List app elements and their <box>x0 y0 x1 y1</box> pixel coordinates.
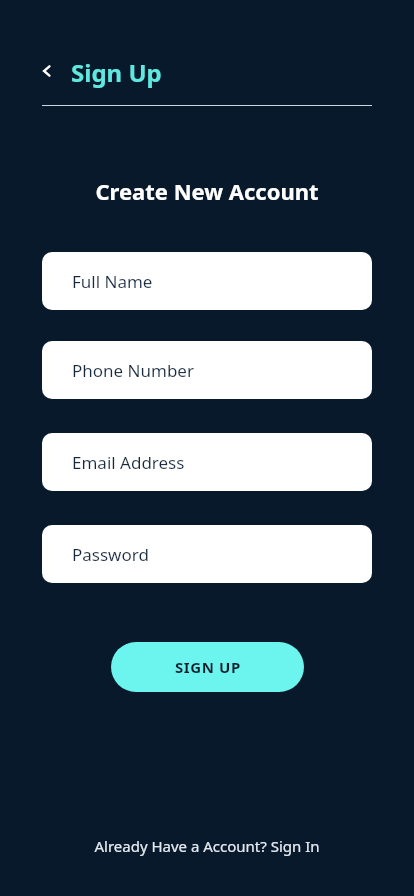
button[interactable]: SIGN UP <box>111 642 304 692</box>
button[interactable]: Email Address <box>42 433 372 491</box>
staticText: Email Address <box>72 451 185 474</box>
staticText: Create New Account <box>95 176 319 206</box>
staticText: Phone Number <box>72 359 194 382</box>
button[interactable]: Full Name <box>42 252 372 310</box>
staticText: Sign Up <box>71 56 162 89</box>
staticText: SIGN UP <box>175 657 241 677</box>
button[interactable]: Back <box>34 57 62 85</box>
staticText: Already Have a Account? Sign In <box>94 836 320 856</box>
button[interactable]: Already Have a Account? Sign In <box>94 836 320 856</box>
staticText: Password <box>72 543 149 566</box>
button[interactable]: Phone Number <box>42 341 372 399</box>
staticText: Full Name <box>72 270 153 293</box>
button[interactable]: Password <box>42 525 372 583</box>
